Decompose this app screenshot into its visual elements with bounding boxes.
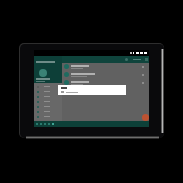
button[interactable]	[34, 94, 62, 99]
button[interactable]	[34, 114, 62, 119]
button[interactable]	[34, 84, 62, 89]
button[interactable]	[34, 104, 62, 109]
button[interactable]	[34, 109, 62, 114]
button[interactable]: Compose	[142, 114, 149, 121]
button[interactable]	[62, 63, 149, 71]
button[interactable]	[34, 89, 62, 94]
button[interactable]	[34, 99, 62, 104]
button[interactable]	[62, 79, 149, 87]
button[interactable]: Search	[125, 58, 128, 61]
button[interactable]	[62, 71, 149, 79]
